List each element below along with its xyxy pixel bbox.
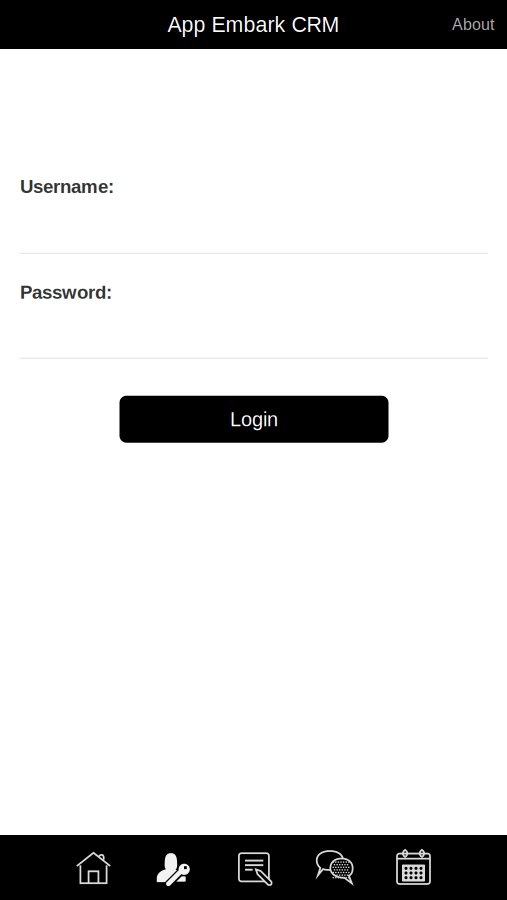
button[interactable]: Contacts <box>154 849 192 885</box>
staticText: Password: <box>20 282 112 303</box>
button[interactable]: Calendar <box>394 849 432 885</box>
staticText: About <box>452 16 494 33</box>
button[interactable]: About <box>436 2 507 47</box>
button[interactable]: Notes <box>234 849 272 885</box>
button[interactable]: Messages <box>314 849 352 885</box>
staticText: Username: <box>20 176 114 197</box>
button[interactable]: Home <box>74 849 112 885</box>
staticText: Login <box>230 408 278 430</box>
button[interactable]: Login <box>119 396 388 443</box>
staticText: App Embark CRM <box>167 13 339 36</box>
